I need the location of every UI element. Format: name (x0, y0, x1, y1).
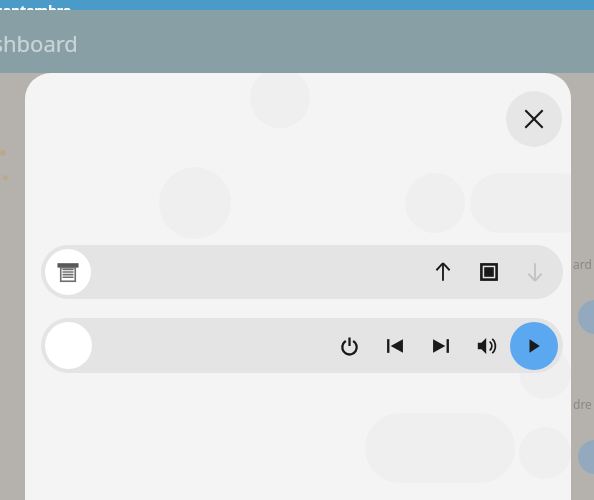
button[interactable]: Power (41, 318, 563, 373)
button[interactable]: Stop cover (467, 250, 511, 294)
staticText: ard (573, 256, 592, 272)
staticText: dre (573, 396, 592, 412)
staticText: 7 septembre (0, 1, 72, 11)
staticText: Dashboard (0, 28, 78, 58)
button[interactable]: Close cover (513, 250, 557, 294)
button[interactable]: Play (510, 322, 558, 370)
button[interactable]: Previous track (374, 325, 416, 367)
button[interactable]: Open cover (41, 245, 563, 299)
button[interactable]: Volume (466, 325, 508, 367)
button[interactable]: Close (506, 91, 562, 147)
button[interactable]: Next track (420, 325, 462, 367)
button[interactable]: Power (328, 325, 370, 367)
button[interactable]: Open cover (421, 250, 465, 294)
